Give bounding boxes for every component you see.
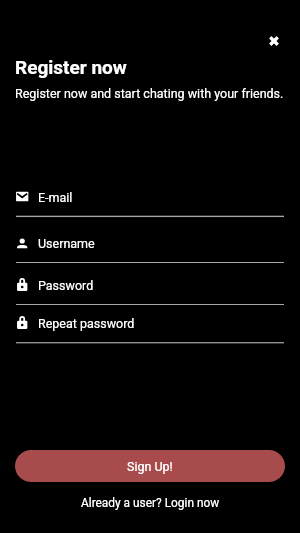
button[interactable]: Sign Up! — [15, 450, 285, 482]
button[interactable]: Password — [0, 277, 300, 305]
staticText: E-mail — [38, 190, 73, 205]
button[interactable]: Repeat password — [0, 315, 300, 343]
staticText: Sign Up! — [127, 459, 173, 474]
staticText: Register now — [15, 56, 127, 78]
staticText: Already a user? Login now — [81, 496, 220, 510]
staticText: Username — [38, 236, 95, 251]
button[interactable]: Close — [262, 29, 286, 53]
button[interactable]: Username — [0, 235, 300, 263]
staticText: Register now and start chating with your… — [15, 86, 284, 101]
button[interactable]: E-mail — [0, 189, 300, 217]
staticText: Repeat password — [38, 316, 135, 331]
button[interactable]: Already a user? Login now — [75, 494, 226, 512]
staticText: Password — [38, 278, 94, 293]
